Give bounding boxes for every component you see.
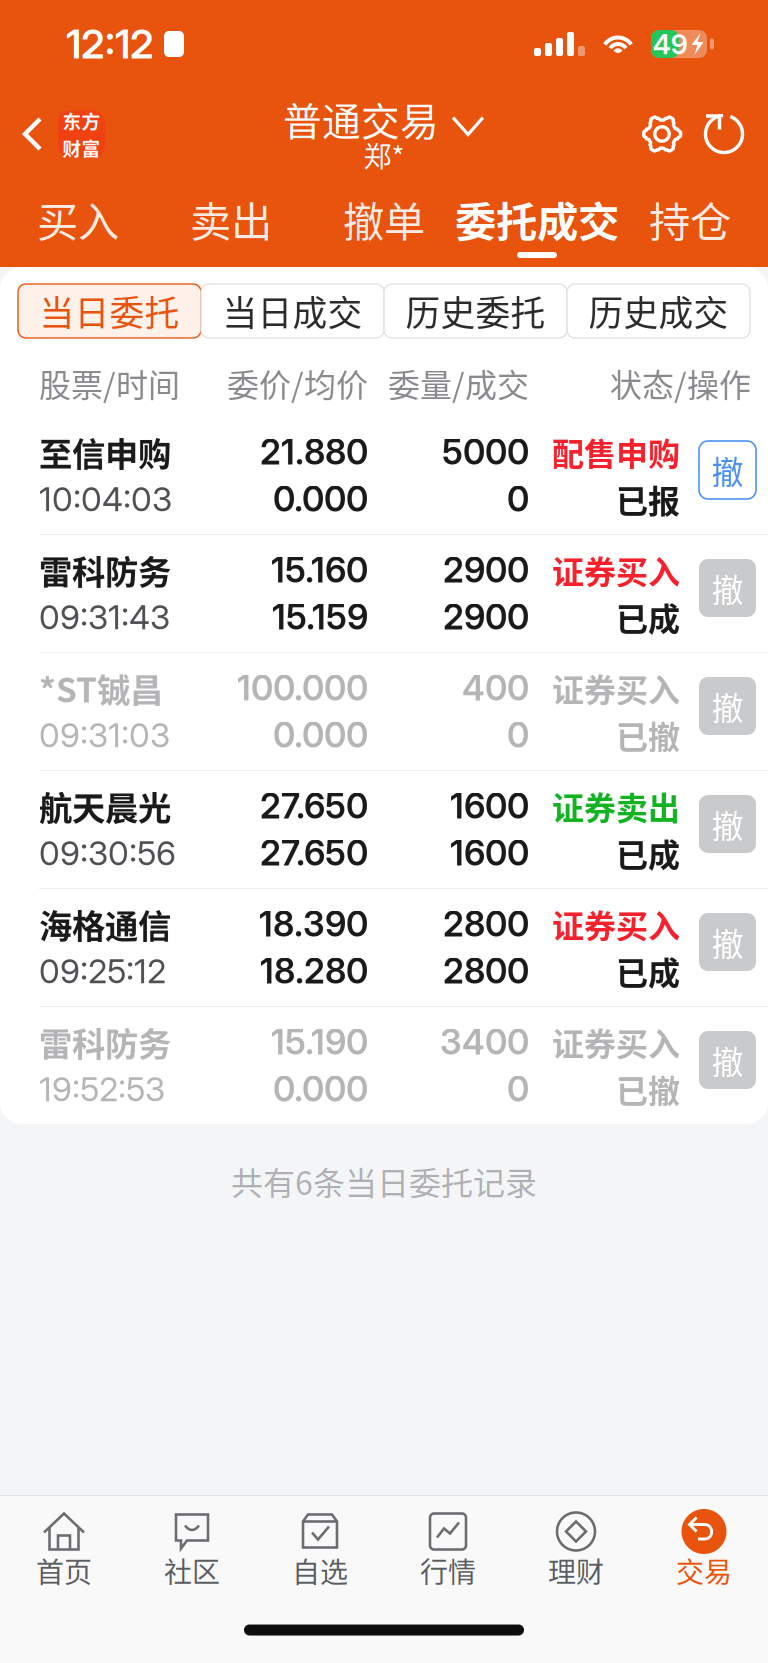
button[interactable]: 买入: [1, 180, 154, 267]
staticText: 已撤: [616, 712, 680, 758]
staticText: 18.280: [260, 950, 368, 992]
staticText: 27.650: [260, 785, 368, 827]
staticText: 10:04:03: [39, 479, 172, 519]
button[interactable]: 航天晨光: [0, 770, 768, 888]
button[interactable]: 行情: [384, 1500, 512, 1592]
staticText: 0: [507, 478, 529, 520]
staticText: 财富: [62, 134, 100, 161]
staticText: 1600: [450, 832, 529, 874]
button[interactable]: 历史委托: [384, 284, 567, 338]
staticText: 撤: [711, 683, 743, 729]
staticText: 当日委托: [39, 286, 179, 336]
staticText: 航天晨光: [39, 782, 171, 830]
button[interactable]: 自选: [256, 1500, 384, 1592]
staticText: 首页: [36, 1550, 92, 1591]
staticText: 已报: [616, 476, 680, 522]
button[interactable]: 委托成交: [460, 180, 613, 267]
button[interactable]: 雷科防务: [0, 534, 768, 652]
staticText: 3400: [440, 1021, 529, 1063]
staticText: 0.000: [273, 478, 368, 520]
staticText: 撤: [711, 565, 743, 611]
button[interactable]: *ST铖昌: [0, 652, 768, 770]
staticText: 2900: [443, 596, 529, 638]
staticText: 证券买入: [552, 1019, 680, 1065]
staticText: 09:31:03: [39, 715, 170, 755]
staticText: 09:31:43: [39, 597, 170, 637]
staticText: 社区: [164, 1550, 220, 1591]
staticText: 撤: [711, 1037, 743, 1083]
staticText: 撤单: [343, 189, 425, 249]
staticText: 买入: [37, 189, 119, 249]
staticText: 郑*: [363, 135, 404, 175]
button[interactable]: Back: [22, 91, 138, 177]
button[interactable]: 至信申购: [0, 416, 768, 534]
button[interactable]: 历史成交: [567, 284, 750, 338]
staticText: 至信申购: [39, 428, 171, 476]
button[interactable]: 交易: [640, 1500, 768, 1592]
staticText: 49: [652, 27, 688, 61]
button[interactable]: 持仓: [613, 180, 766, 267]
staticText: 12:12: [66, 20, 154, 68]
staticText: 当日成交: [222, 286, 362, 336]
staticText: 15.160: [271, 549, 368, 591]
staticText: 撤: [711, 919, 743, 965]
staticText: 15.159: [272, 596, 368, 638]
button[interactable]: Settings: [640, 112, 684, 156]
staticText: 5000: [442, 431, 529, 473]
staticText: 19:52:53: [39, 1069, 165, 1109]
staticText: 2800: [443, 950, 529, 992]
staticText: 行情: [420, 1550, 476, 1591]
staticText: 卖出: [190, 189, 272, 249]
staticText: 共有6条当日委托记录: [231, 1158, 537, 1204]
staticText: 撤: [711, 801, 743, 847]
button[interactable]: 当日成交: [201, 284, 384, 338]
staticText: 已撤: [616, 1066, 680, 1112]
staticText: 委量/成交: [388, 360, 529, 406]
staticText: 委价/均价: [227, 360, 368, 406]
staticText: 雷科防务: [39, 546, 171, 594]
staticText: 持仓: [649, 189, 731, 249]
staticText: 配售申购: [552, 429, 680, 475]
staticText: 27.650: [260, 832, 368, 874]
button[interactable]: 撤单: [307, 180, 460, 267]
staticText: 股票/时间: [39, 360, 180, 406]
button[interactable]: 理财: [512, 1500, 640, 1592]
staticText: 2800: [443, 903, 529, 945]
staticText: 400: [462, 667, 529, 709]
staticText: 交易: [676, 1550, 732, 1591]
staticText: 18.390: [259, 903, 368, 945]
staticText: 证券买入: [552, 665, 680, 711]
button[interactable]: 雷科防务: [0, 1006, 768, 1124]
staticText: 证券买入: [552, 901, 680, 947]
button[interactable]: 普通交易: [283, 91, 485, 177]
staticText: 09:30:56: [39, 833, 176, 873]
staticText: 普通交易: [283, 91, 439, 147]
staticText: 21.880: [260, 431, 368, 473]
staticText: 撤: [711, 447, 743, 493]
staticText: 东方: [62, 107, 100, 134]
staticText: 15.190: [271, 1021, 368, 1063]
staticText: 委托成交: [455, 189, 619, 249]
button[interactable]: 首页: [0, 1500, 128, 1592]
staticText: 历史成交: [588, 286, 728, 336]
staticText: 状态/操作: [610, 360, 751, 406]
staticText: 已成: [616, 830, 680, 876]
staticText: 已成: [616, 948, 680, 994]
button[interactable]: 社区: [128, 1500, 256, 1592]
staticText: 09:25:12: [39, 951, 166, 991]
staticText: 0: [507, 1068, 529, 1110]
staticText: 雷科防务: [39, 1018, 171, 1066]
staticText: 100.000: [237, 667, 368, 709]
button[interactable]: 当日委托: [18, 284, 201, 338]
staticText: 证券买入: [552, 547, 680, 593]
staticText: 自选: [292, 1550, 348, 1591]
staticText: 已成: [616, 594, 680, 640]
staticText: 证券卖出: [552, 783, 680, 829]
button[interactable]: 卖出: [154, 180, 307, 267]
staticText: 0.000: [273, 1068, 368, 1110]
button[interactable]: 海格通信: [0, 888, 768, 1006]
staticText: *ST铖昌: [39, 664, 163, 712]
button[interactable]: Refresh: [702, 112, 746, 156]
staticText: 理财: [548, 1550, 604, 1591]
staticText: 2900: [443, 549, 529, 591]
